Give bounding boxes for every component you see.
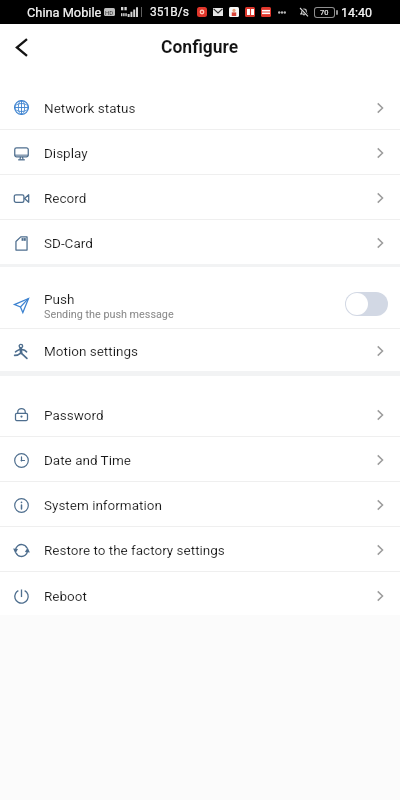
staticText: Reboot [44, 588, 87, 604]
button[interactable]: Display [0, 130, 400, 174]
button[interactable]: Date and Time [0, 437, 400, 481]
staticText: China Mobile [27, 5, 102, 20]
staticText: Restore to the factory settings [44, 542, 225, 558]
button[interactable]: Restore to the factory settings [0, 527, 400, 571]
staticText: Configure [161, 37, 239, 58]
staticText: System information [44, 497, 162, 513]
staticText: Sending the push message [44, 308, 174, 321]
staticText: 351B/s [150, 5, 189, 19]
staticText: SD-Card [44, 235, 93, 251]
button[interactable]: Push [0, 267, 400, 328]
button[interactable]: Back [0, 25, 43, 69]
button[interactable]: Reboot [0, 572, 400, 618]
staticText: 14:40 [341, 5, 373, 20]
staticText: 70 [320, 8, 329, 17]
button[interactable]: Network status [0, 84, 400, 129]
button[interactable]: System information [0, 482, 400, 526]
button[interactable]: Motion settings [0, 329, 400, 371]
staticText: Record [44, 190, 87, 206]
staticText: HD [105, 9, 114, 16]
staticText: Motion settings [44, 343, 138, 359]
staticText: Network status [44, 100, 136, 116]
button[interactable]: Push toggle [345, 292, 388, 316]
staticText: Date and Time [44, 452, 131, 468]
button[interactable]: Password [0, 391, 400, 436]
button[interactable]: SD-Card [0, 220, 400, 264]
button[interactable]: Record [0, 175, 400, 219]
staticText: Password [44, 407, 104, 423]
staticText: Push [44, 291, 75, 307]
staticText: Display [44, 145, 88, 161]
